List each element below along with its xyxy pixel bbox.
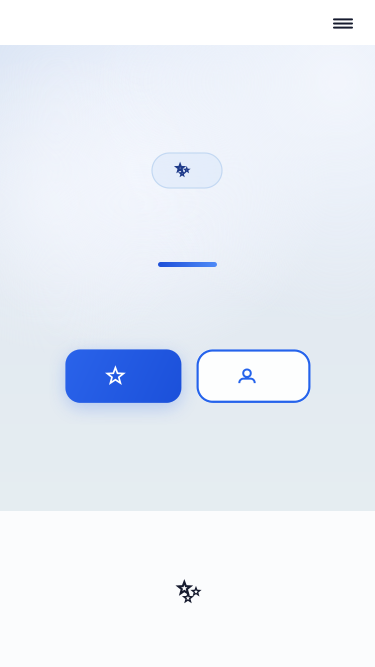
button[interactable]: Menu	[321, 1, 365, 45]
button[interactable]: Profile	[196, 349, 310, 403]
button[interactable]: Favourites	[65, 349, 181, 403]
